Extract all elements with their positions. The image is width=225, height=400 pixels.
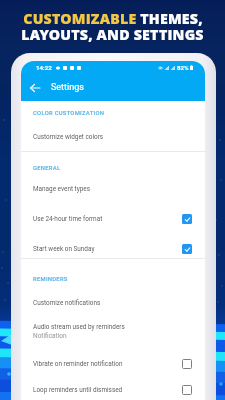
button[interactable]: Manage event types: [21, 180, 205, 198]
staticText: 82%: [177, 64, 189, 71]
staticText: Use 24-hour time format: [33, 215, 103, 223]
button[interactable]: Loop reminders until dismissed: [21, 381, 205, 399]
button[interactable]: Back: [26, 79, 44, 97]
staticText: Customize notifications: [33, 299, 101, 307]
staticText: 14:22: [36, 64, 52, 71]
button[interactable]: Customize notifications: [21, 294, 205, 312]
staticText: LAYOUTS, AND SETTINGS: [21, 25, 204, 44]
button[interactable]: Start week on Sunday: [21, 240, 205, 258]
staticText: Start week on Sunday: [33, 245, 95, 253]
staticText: Notification: [33, 332, 67, 340]
staticText: GENERAL: [33, 165, 61, 172]
button[interactable]: Vibrate on reminder notification: [21, 355, 205, 373]
staticText: Audio stream used by reminders: [33, 323, 125, 331]
staticText: Loop reminders until dismissed: [33, 386, 123, 394]
staticText: Customize widget colors: [33, 133, 104, 141]
staticText: Settings: [51, 82, 84, 93]
button[interactable]: Audio stream used by reminders: [21, 320, 205, 342]
staticText: Manage event types: [33, 185, 91, 193]
button[interactable]: Customize widget colors: [21, 128, 205, 146]
staticText: COLOR CUSTOMIZATION: [33, 110, 105, 117]
staticText: CUSTOMIZABLE THEMES,: [23, 9, 203, 28]
button[interactable]: Use 24-hour time format: [21, 210, 205, 228]
staticText: Vibrate on reminder notification: [33, 360, 123, 368]
staticText: REMINDERS: [33, 276, 68, 283]
